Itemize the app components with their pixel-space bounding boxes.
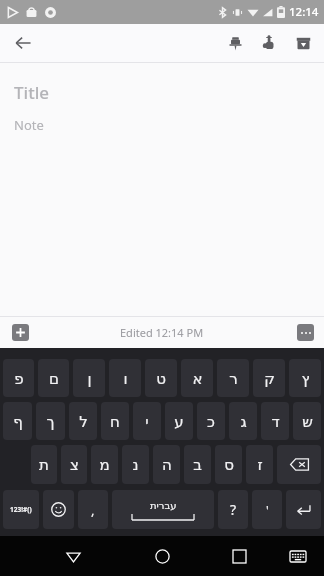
- button[interactable]: ד: [261, 402, 289, 440]
- button[interactable]: ?: [218, 490, 248, 529]
- button[interactable]: ע: [165, 402, 193, 440]
- button[interactable]: ': [252, 490, 282, 529]
- button[interactable]: [286, 490, 321, 529]
- button[interactable]: Add: [12, 324, 29, 341]
- staticText: מ: [99, 456, 110, 473]
- staticText: ק: [264, 370, 275, 387]
- staticText: ?: [230, 500, 237, 519]
- button[interactable]: ש: [293, 402, 321, 440]
- button[interactable]: ת: [31, 445, 57, 484]
- staticText: ן: [87, 370, 92, 387]
- button[interactable]: ב: [184, 445, 211, 484]
- staticText: ד: [271, 413, 280, 430]
- staticText: ש: [302, 413, 313, 430]
- staticText: י: [145, 413, 149, 430]
- button[interactable]: Reminder: [254, 28, 284, 58]
- button[interactable]: More options: [297, 324, 314, 341]
- staticText: ת: [39, 456, 49, 473]
- button[interactable]: צ: [61, 445, 87, 484]
- staticText: 12:14: [289, 4, 319, 20]
- button[interactable]: ו: [109, 359, 141, 397]
- staticText: ה: [162, 456, 172, 473]
- staticText: ז: [257, 456, 263, 473]
- staticText: ': [266, 502, 269, 518]
- button[interactable]: Archive: [288, 28, 318, 58]
- staticText: פ: [14, 370, 24, 387]
- button[interactable]: 123!#(): [3, 490, 39, 529]
- button[interactable]: [277, 445, 321, 484]
- button[interactable]: Pin: [220, 28, 250, 58]
- staticText: ל: [79, 413, 88, 430]
- button[interactable]: Back: [8, 28, 38, 58]
- staticText: ח: [110, 413, 120, 430]
- button[interactable]: ח: [101, 402, 129, 440]
- button[interactable]: Switch keyboard: [284, 542, 312, 570]
- button[interactable]: ג: [229, 402, 257, 440]
- staticText: כ: [207, 413, 215, 430]
- staticText: עברית: [150, 500, 177, 512]
- staticText: ך: [46, 413, 55, 430]
- button[interactable]: ל: [69, 402, 97, 440]
- button[interactable]: י: [133, 402, 161, 440]
- staticText: א: [192, 370, 203, 387]
- button[interactable]: ,: [78, 490, 108, 529]
- staticText: ס: [224, 456, 234, 473]
- staticText: ף: [13, 413, 23, 430]
- staticText: ב: [193, 456, 202, 473]
- button[interactable]: ף: [3, 402, 32, 440]
- button[interactable]: כ: [197, 402, 225, 440]
- staticText: Edited 12:14 PM: [120, 325, 204, 340]
- button[interactable]: נ: [122, 445, 149, 484]
- button[interactable]: Back: [56, 539, 90, 573]
- staticText: ר: [229, 370, 238, 387]
- button[interactable]: ם: [38, 359, 69, 397]
- button[interactable]: מ: [91, 445, 118, 484]
- button[interactable]: פ: [3, 359, 34, 397]
- button[interactable]: Home: [145, 539, 179, 573]
- staticText: ו: [123, 370, 128, 387]
- staticText: ע: [174, 413, 184, 430]
- staticText: ט: [156, 370, 166, 387]
- button[interactable]: ז: [246, 445, 273, 484]
- button[interactable]: עברית: [112, 490, 214, 529]
- staticText: ,: [91, 501, 95, 519]
- staticText: 123!#(): [10, 505, 32, 514]
- staticText: ג: [240, 413, 247, 430]
- button[interactable]: ה: [153, 445, 180, 484]
- staticText: צ: [70, 456, 79, 473]
- button[interactable]: ט: [145, 359, 177, 397]
- button[interactable]: ר: [217, 359, 249, 397]
- button[interactable]: Title: [14, 81, 50, 104]
- button[interactable]: ץ: [289, 359, 321, 397]
- staticText: ץ: [301, 370, 310, 387]
- button[interactable]: ס: [215, 445, 242, 484]
- button[interactable]: ק: [253, 359, 285, 397]
- button[interactable]: Note: [14, 116, 44, 134]
- button[interactable]: [43, 490, 74, 529]
- staticText: ם: [49, 370, 59, 387]
- button[interactable]: Recents: [222, 539, 256, 573]
- staticText: נ: [132, 456, 139, 473]
- button[interactable]: ך: [36, 402, 65, 440]
- button[interactable]: ן: [73, 359, 105, 397]
- button[interactable]: א: [181, 359, 213, 397]
